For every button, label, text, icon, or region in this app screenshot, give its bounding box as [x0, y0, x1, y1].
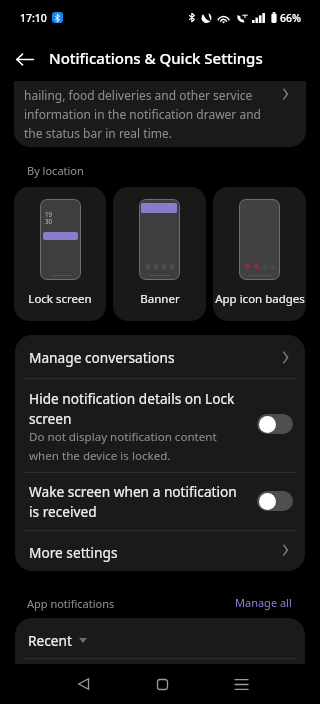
staticText: App notifications [27, 596, 115, 611]
staticText: Banner [140, 291, 180, 307]
button[interactable]: App icon badges [213, 187, 306, 321]
staticText: Do not display notification content when… [29, 429, 225, 463]
staticText: Recent [28, 631, 72, 650]
button[interactable]: hailing, food deliveries and other servi… [14, 81, 306, 147]
staticText: By location [27, 163, 84, 178]
button[interactable]: Hide notification details on Lock screen [15, 378, 305, 472]
staticText: 30 [45, 217, 53, 225]
button[interactable]: Manage conversations [15, 335, 305, 378]
staticText: Wake screen when a notification is recei… [29, 482, 241, 521]
button[interactable]: Manage all [230, 592, 292, 612]
button[interactable]: Banner [113, 187, 206, 321]
button[interactable]: Back [8, 42, 42, 76]
button[interactable]: 19 [14, 187, 106, 321]
staticText: Manage conversations [29, 348, 175, 367]
staticText: Hide notification details on Lock screen [29, 389, 241, 428]
button[interactable]: Recent apps [219, 664, 263, 704]
staticText: App icon badges [215, 291, 305, 307]
button[interactable]: Recent [26, 629, 89, 652]
staticText: Lock screen [28, 291, 92, 307]
button[interactable]: Back [61, 664, 105, 704]
staticText: hailing, food deliveries and other servi… [24, 87, 264, 142]
button[interactable]: More settings [15, 530, 305, 571]
staticText: More settings [29, 543, 118, 562]
button[interactable]: Toggle off [257, 491, 293, 511]
staticText: 19 [45, 210, 53, 218]
staticText: Manage all [235, 595, 292, 610]
staticText: Notifications & Quick Settings [49, 48, 263, 68]
button[interactable]: Wake screen when a notification is recei… [15, 472, 305, 530]
button[interactable]: Toggle off [257, 414, 293, 434]
staticText: 66% [280, 11, 301, 25]
button[interactable]: Home [140, 664, 184, 704]
staticText: 17:10 [20, 11, 47, 25]
